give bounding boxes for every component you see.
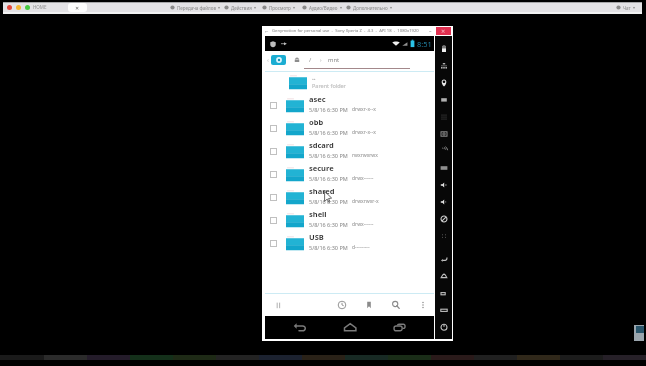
button[interactable]: Select sdcard xyxy=(265,140,434,163)
button[interactable]: Close window xyxy=(7,5,12,10)
staticText: obb xyxy=(309,117,324,127)
button[interactable]: Keyboard xyxy=(435,159,452,176)
button[interactable]: Select shared xyxy=(265,186,434,209)
button[interactable]: Recents xyxy=(393,320,408,335)
staticText: secure xyxy=(309,163,334,173)
staticText: 5/8/16 6:30 PM xyxy=(309,152,348,159)
button[interactable]: Back xyxy=(435,250,452,267)
staticText: ✕ xyxy=(75,5,80,11)
staticText: ‹ xyxy=(267,56,269,64)
button[interactable]: Select obb xyxy=(265,117,434,140)
staticText: drwx------ xyxy=(352,221,374,228)
button[interactable]: More options xyxy=(418,300,428,310)
staticText: drwxrwxr-x xyxy=(352,198,379,205)
button[interactable]: Select sdcard xyxy=(270,148,277,155)
button[interactable]: Передача файлов xyxy=(170,3,218,12)
button[interactable]: SMS xyxy=(435,91,452,108)
staticText: mnt xyxy=(328,56,340,64)
staticText: Просмотр xyxy=(269,5,291,11)
button[interactable]: GPS xyxy=(435,74,452,91)
staticText: ▾ xyxy=(633,5,634,10)
staticText: HOME xyxy=(33,4,47,10)
button[interactable]: .. xyxy=(265,71,434,94)
staticText: ▾ xyxy=(390,5,392,10)
staticText: .. xyxy=(312,73,316,82)
button[interactable]: Power xyxy=(435,318,452,335)
staticText: ✕ xyxy=(441,28,446,34)
button[interactable]: Menu xyxy=(435,301,452,318)
button[interactable]: Maximise window xyxy=(25,5,30,10)
staticText: 5/8/16 6:30 PM xyxy=(309,244,348,251)
button[interactable]: Действия xyxy=(224,3,256,12)
button[interactable]: Battery xyxy=(435,40,452,57)
button[interactable]: Bookmarks xyxy=(364,300,374,310)
button[interactable]: Select shell xyxy=(270,217,277,224)
button[interactable]: Select secure xyxy=(270,171,277,178)
button[interactable]: Select asec xyxy=(265,94,434,117)
button[interactable]: Pause xyxy=(274,301,283,310)
staticText: drwx------ xyxy=(352,175,374,182)
staticText: shared xyxy=(309,186,335,196)
staticText: d--------- xyxy=(352,244,370,251)
button[interactable]: Back xyxy=(293,320,308,335)
staticText: Чат xyxy=(623,5,631,11)
button[interactable]: Select shared xyxy=(270,194,277,201)
button[interactable]: Volume down xyxy=(435,193,452,210)
button[interactable]: Minimise window xyxy=(16,5,21,10)
button[interactable]: Screencast xyxy=(435,142,452,159)
staticText: Действия xyxy=(231,5,252,11)
staticText: Аудио/Видео xyxy=(309,5,338,11)
button[interactable]: Screen capture xyxy=(435,125,452,142)
button[interactable]: Search xyxy=(391,300,401,310)
staticText: USB xyxy=(309,232,324,242)
button[interactable]: Home xyxy=(343,320,358,335)
button[interactable]: Rotate xyxy=(435,210,452,227)
button[interactable]: Close emulator xyxy=(436,27,451,35)
button[interactable]: History xyxy=(337,300,347,310)
button[interactable]: Select asec xyxy=(270,102,277,109)
button[interactable]: Close tab xyxy=(68,3,87,12)
staticText: drwxr-x--x xyxy=(352,129,376,136)
button[interactable]: Просмотр xyxy=(262,3,296,12)
staticText: 5/8/16 6:30 PM xyxy=(309,106,348,113)
staticText: Parent folder xyxy=(312,82,346,89)
staticText: Genymotion for personal use - Sony Xperi… xyxy=(272,28,419,34)
staticText: ▾ xyxy=(254,5,256,10)
button[interactable]: Select secure xyxy=(265,163,434,186)
staticText: ▾ xyxy=(293,5,296,10)
button[interactable]: Select shell xyxy=(265,209,434,232)
staticText: shell xyxy=(309,209,327,219)
button[interactable]: Select USB xyxy=(265,232,434,255)
button[interactable]: Volume up xyxy=(435,176,452,193)
button[interactable]: Select obb xyxy=(270,125,277,132)
staticText: 5/8/16 6:30 PM xyxy=(309,129,348,136)
staticText: Передача файлов xyxy=(177,5,216,11)
button[interactable]: Home xyxy=(435,267,452,284)
button[interactable]: Дополнительно xyxy=(346,3,392,12)
button[interactable]: Read only xyxy=(293,56,301,64)
button[interactable]: Keyboard shortcuts xyxy=(435,108,452,125)
staticText: › xyxy=(320,57,322,64)
staticText: Дополнительно xyxy=(353,5,388,11)
staticText: / xyxy=(309,56,312,64)
staticText: ← xyxy=(265,29,269,34)
staticText: sdcard xyxy=(309,140,334,150)
staticText: 5/8/16 6:30 PM xyxy=(309,175,348,182)
button[interactable]: Recents xyxy=(435,284,452,301)
staticText: 5/8/16 6:30 PM xyxy=(309,221,348,228)
staticText: – xyxy=(429,28,432,35)
button[interactable]: Аудио/Видео xyxy=(302,3,340,12)
staticText: asec xyxy=(309,94,326,104)
button[interactable]: More xyxy=(435,227,452,244)
button[interactable]: Чат xyxy=(616,3,634,12)
button[interactable]: Storage icon xyxy=(271,55,286,65)
staticText: rwxrwxrwx xyxy=(352,152,378,159)
button[interactable]: Network xyxy=(435,57,452,74)
staticText: 8:51 xyxy=(417,39,432,49)
staticText: 5/8/16 6:30 PM xyxy=(309,198,348,205)
staticText: drwxr-x--x xyxy=(352,106,376,113)
button[interactable]: Select USB xyxy=(270,240,277,247)
